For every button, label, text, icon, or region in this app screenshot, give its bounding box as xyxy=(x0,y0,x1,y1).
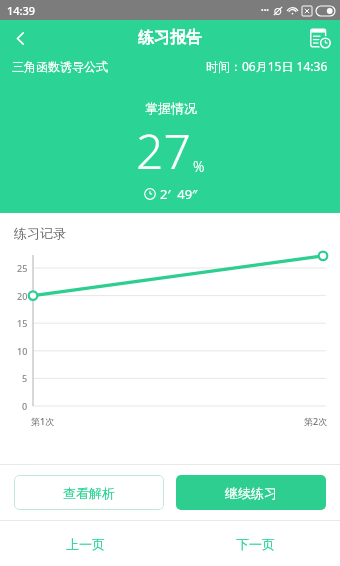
staticText: 27 xyxy=(136,118,191,183)
staticText: 三角函数诱导公式 xyxy=(12,59,108,74)
staticText: 第2次 xyxy=(304,415,328,427)
staticText: % xyxy=(193,157,205,176)
staticText: 0 xyxy=(22,400,28,412)
staticText: 第1次 xyxy=(31,415,55,427)
button[interactable]: Report history xyxy=(300,20,340,56)
staticText: ••• xyxy=(261,6,269,16)
staticText: 下一页 xyxy=(236,536,275,552)
staticText: 25 xyxy=(17,262,28,274)
staticText: 时间：06月15日 14:36 xyxy=(206,58,328,74)
staticText: 2′ 49″ xyxy=(160,185,198,203)
staticText: 练习记录 xyxy=(14,225,66,241)
staticText: 上一页 xyxy=(66,536,105,552)
staticText: 掌握情况 xyxy=(145,100,197,116)
button[interactable]: Back xyxy=(0,20,40,56)
staticText: 练习报告 xyxy=(138,28,202,48)
staticText: 20 xyxy=(17,290,28,302)
staticText: 14:39 xyxy=(7,3,36,18)
staticText: 10 xyxy=(17,345,28,357)
button[interactable]: 上一页 xyxy=(0,521,170,566)
staticText: 继续练习 xyxy=(225,485,277,501)
staticText: 5 xyxy=(22,372,28,384)
staticText: 15 xyxy=(17,317,28,329)
staticText: 查看解析 xyxy=(63,485,115,501)
button[interactable]: 查看解析 xyxy=(14,475,164,510)
button[interactable]: 继续练习 xyxy=(176,475,326,510)
button[interactable]: 下一页 xyxy=(170,521,340,566)
